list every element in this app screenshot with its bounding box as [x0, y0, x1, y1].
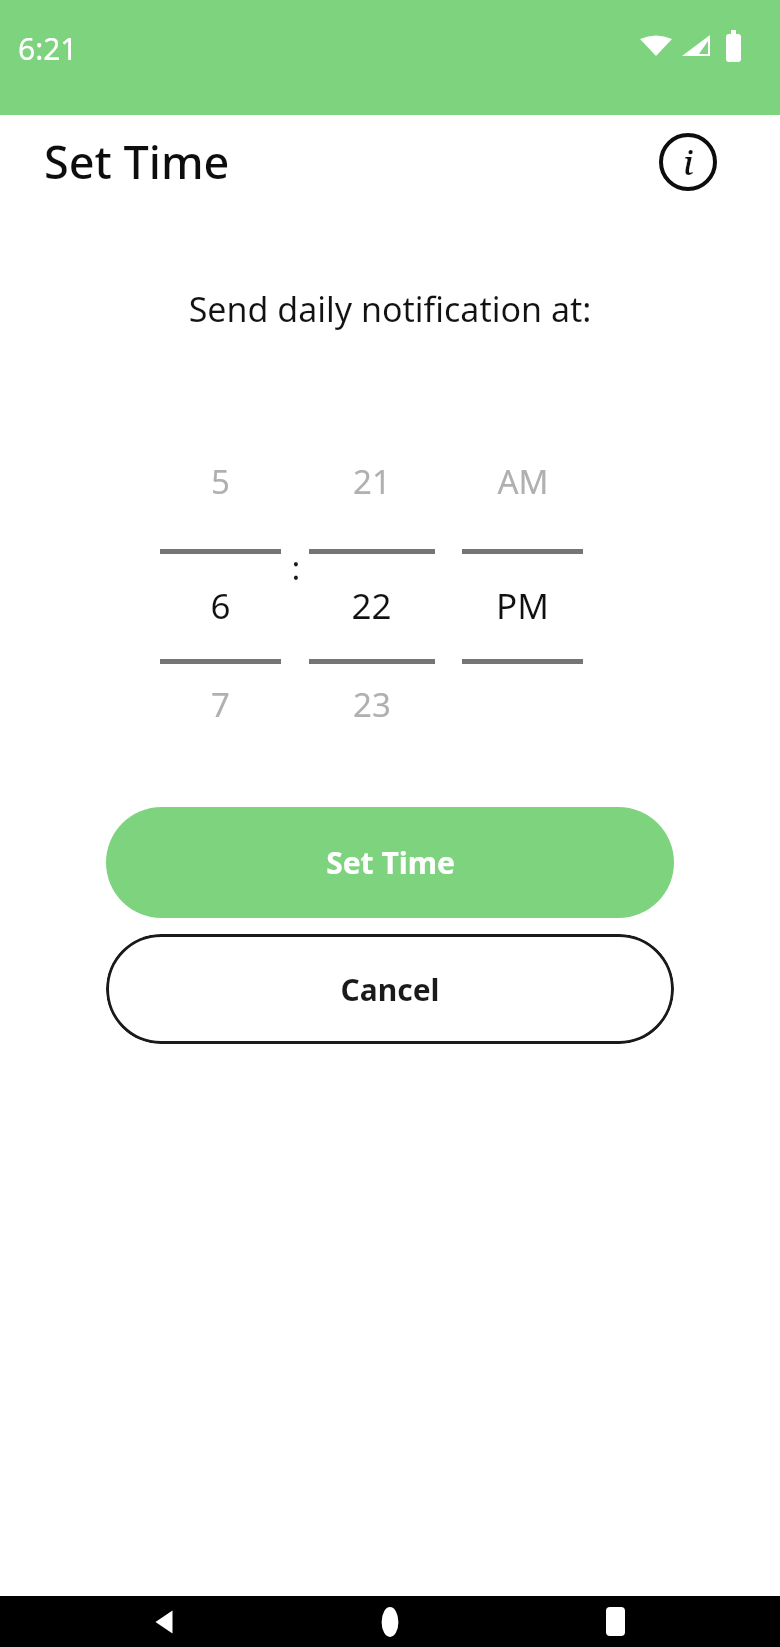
button[interactable]: Hour — [145, 435, 296, 725]
staticText: 5 — [211, 459, 230, 504]
staticText: : — [286, 545, 306, 590]
button[interactable]: Home — [355, 1596, 425, 1647]
button[interactable]: Info — [658, 132, 718, 192]
button[interactable]: AM or PM — [447, 435, 598, 725]
button[interactable]: Recent apps — [580, 1596, 650, 1647]
button[interactable]: Cancel — [106, 934, 674, 1044]
staticText: Cancel — [340, 969, 440, 1010]
staticText: 22 — [351, 582, 392, 630]
staticText: 21 — [353, 459, 391, 504]
staticText: Set Time — [44, 131, 230, 192]
button[interactable]: Set Time — [106, 807, 674, 918]
button[interactable]: Back — [130, 1596, 200, 1647]
staticText: 7 — [211, 682, 230, 725]
staticText: 6:21 — [18, 28, 78, 69]
staticText: i — [683, 140, 694, 185]
staticText: 6 — [210, 582, 231, 630]
staticText: PM — [496, 582, 549, 630]
staticText: Send daily notification at: — [0, 286, 780, 332]
staticText: AM — [497, 459, 549, 504]
staticText: Set Time — [326, 842, 455, 883]
button[interactable]: Minute — [296, 435, 447, 725]
staticText: 23 — [353, 682, 391, 725]
